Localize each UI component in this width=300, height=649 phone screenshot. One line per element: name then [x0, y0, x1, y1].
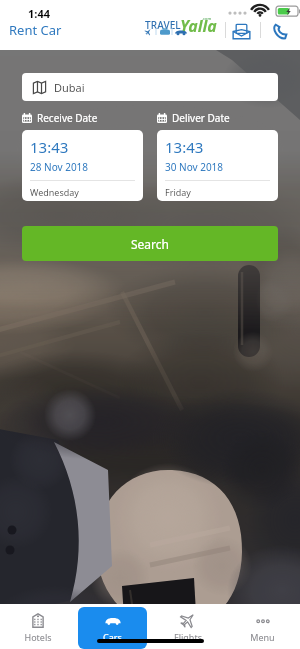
- button[interactable]: Call: [270, 22, 289, 41]
- staticText: 13:43: [30, 137, 69, 157]
- staticText: Menu: [250, 631, 275, 643]
- staticText: Search: [131, 236, 169, 252]
- button[interactable]: TRAVEL: [145, 14, 211, 37]
- staticText: Friday: [165, 186, 191, 198]
- button[interactable]: 13:43: [157, 130, 278, 201]
- staticText: Rent Car: [9, 21, 62, 39]
- staticText: 13:43: [165, 137, 204, 157]
- staticText: Deliver Date: [172, 111, 230, 125]
- staticText: 1:44: [28, 6, 50, 21]
- button[interactable]: Cars: [78, 607, 147, 649]
- button[interactable]: 13:43: [22, 130, 143, 201]
- staticText: 30 Nov 2018: [165, 160, 224, 174]
- staticText: TRAVEL: [145, 18, 181, 32]
- staticText: Flights: [174, 631, 202, 643]
- button[interactable]: Search: [22, 226, 278, 261]
- staticText: .com: [202, 16, 212, 21]
- button[interactable]: Hotels: [3, 607, 72, 649]
- staticText: Receive Date: [37, 111, 98, 125]
- button[interactable]: Rent Car: [9, 21, 62, 39]
- staticText: Dubai: [54, 80, 85, 95]
- staticText: Hotels: [24, 631, 52, 643]
- button[interactable]: Dubai: [22, 73, 278, 101]
- staticText: Cars: [103, 631, 122, 643]
- staticText: Wednesday: [30, 186, 79, 198]
- button[interactable]: Menu: [228, 607, 297, 649]
- staticText: Yalla: [180, 15, 217, 37]
- button[interactable]: Flights: [153, 607, 222, 649]
- staticText: 28 Nov 2018: [30, 160, 89, 174]
- button[interactable]: Email: [232, 22, 251, 41]
